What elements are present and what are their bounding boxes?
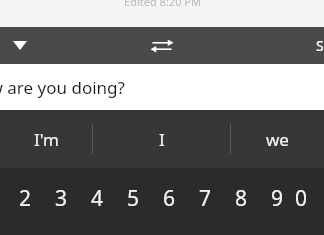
button[interactable]: I bbox=[93, 110, 230, 168]
staticText: How are you doing? bbox=[0, 76, 125, 99]
staticText: Edited 8:20 PM bbox=[124, 0, 201, 9]
staticText: we bbox=[266, 128, 289, 151]
button[interactable]: 7 bbox=[187, 170, 223, 226]
staticText: 6 bbox=[163, 184, 176, 213]
button[interactable]: 4 bbox=[79, 170, 115, 226]
staticText: 2 bbox=[19, 184, 32, 213]
staticText: 8 bbox=[235, 184, 248, 213]
button[interactable]: I'm bbox=[0, 110, 92, 168]
button[interactable]: Spanish bbox=[272, 27, 324, 64]
button[interactable]: Select source language bbox=[0, 27, 40, 64]
button[interactable]: 8 bbox=[223, 170, 259, 226]
button[interactable]: Swap languages bbox=[139, 27, 185, 64]
button[interactable]: 9 bbox=[259, 170, 295, 226]
button[interactable]: 2 bbox=[7, 170, 43, 226]
staticText: 4 bbox=[91, 184, 104, 213]
button[interactable]: 6 bbox=[151, 170, 187, 226]
button[interactable]: we bbox=[231, 110, 324, 168]
button[interactable]: 3 bbox=[43, 170, 79, 226]
button[interactable]: 5 bbox=[115, 170, 151, 226]
staticText: I bbox=[159, 128, 165, 151]
staticText: 3 bbox=[55, 184, 68, 213]
staticText: 7 bbox=[199, 184, 212, 213]
staticText: I'm bbox=[34, 128, 59, 151]
staticText: 9 bbox=[271, 184, 284, 213]
staticText: Spanish bbox=[316, 36, 324, 55]
button[interactable]: How are you doing? bbox=[0, 64, 324, 110]
staticText: 5 bbox=[127, 184, 140, 213]
